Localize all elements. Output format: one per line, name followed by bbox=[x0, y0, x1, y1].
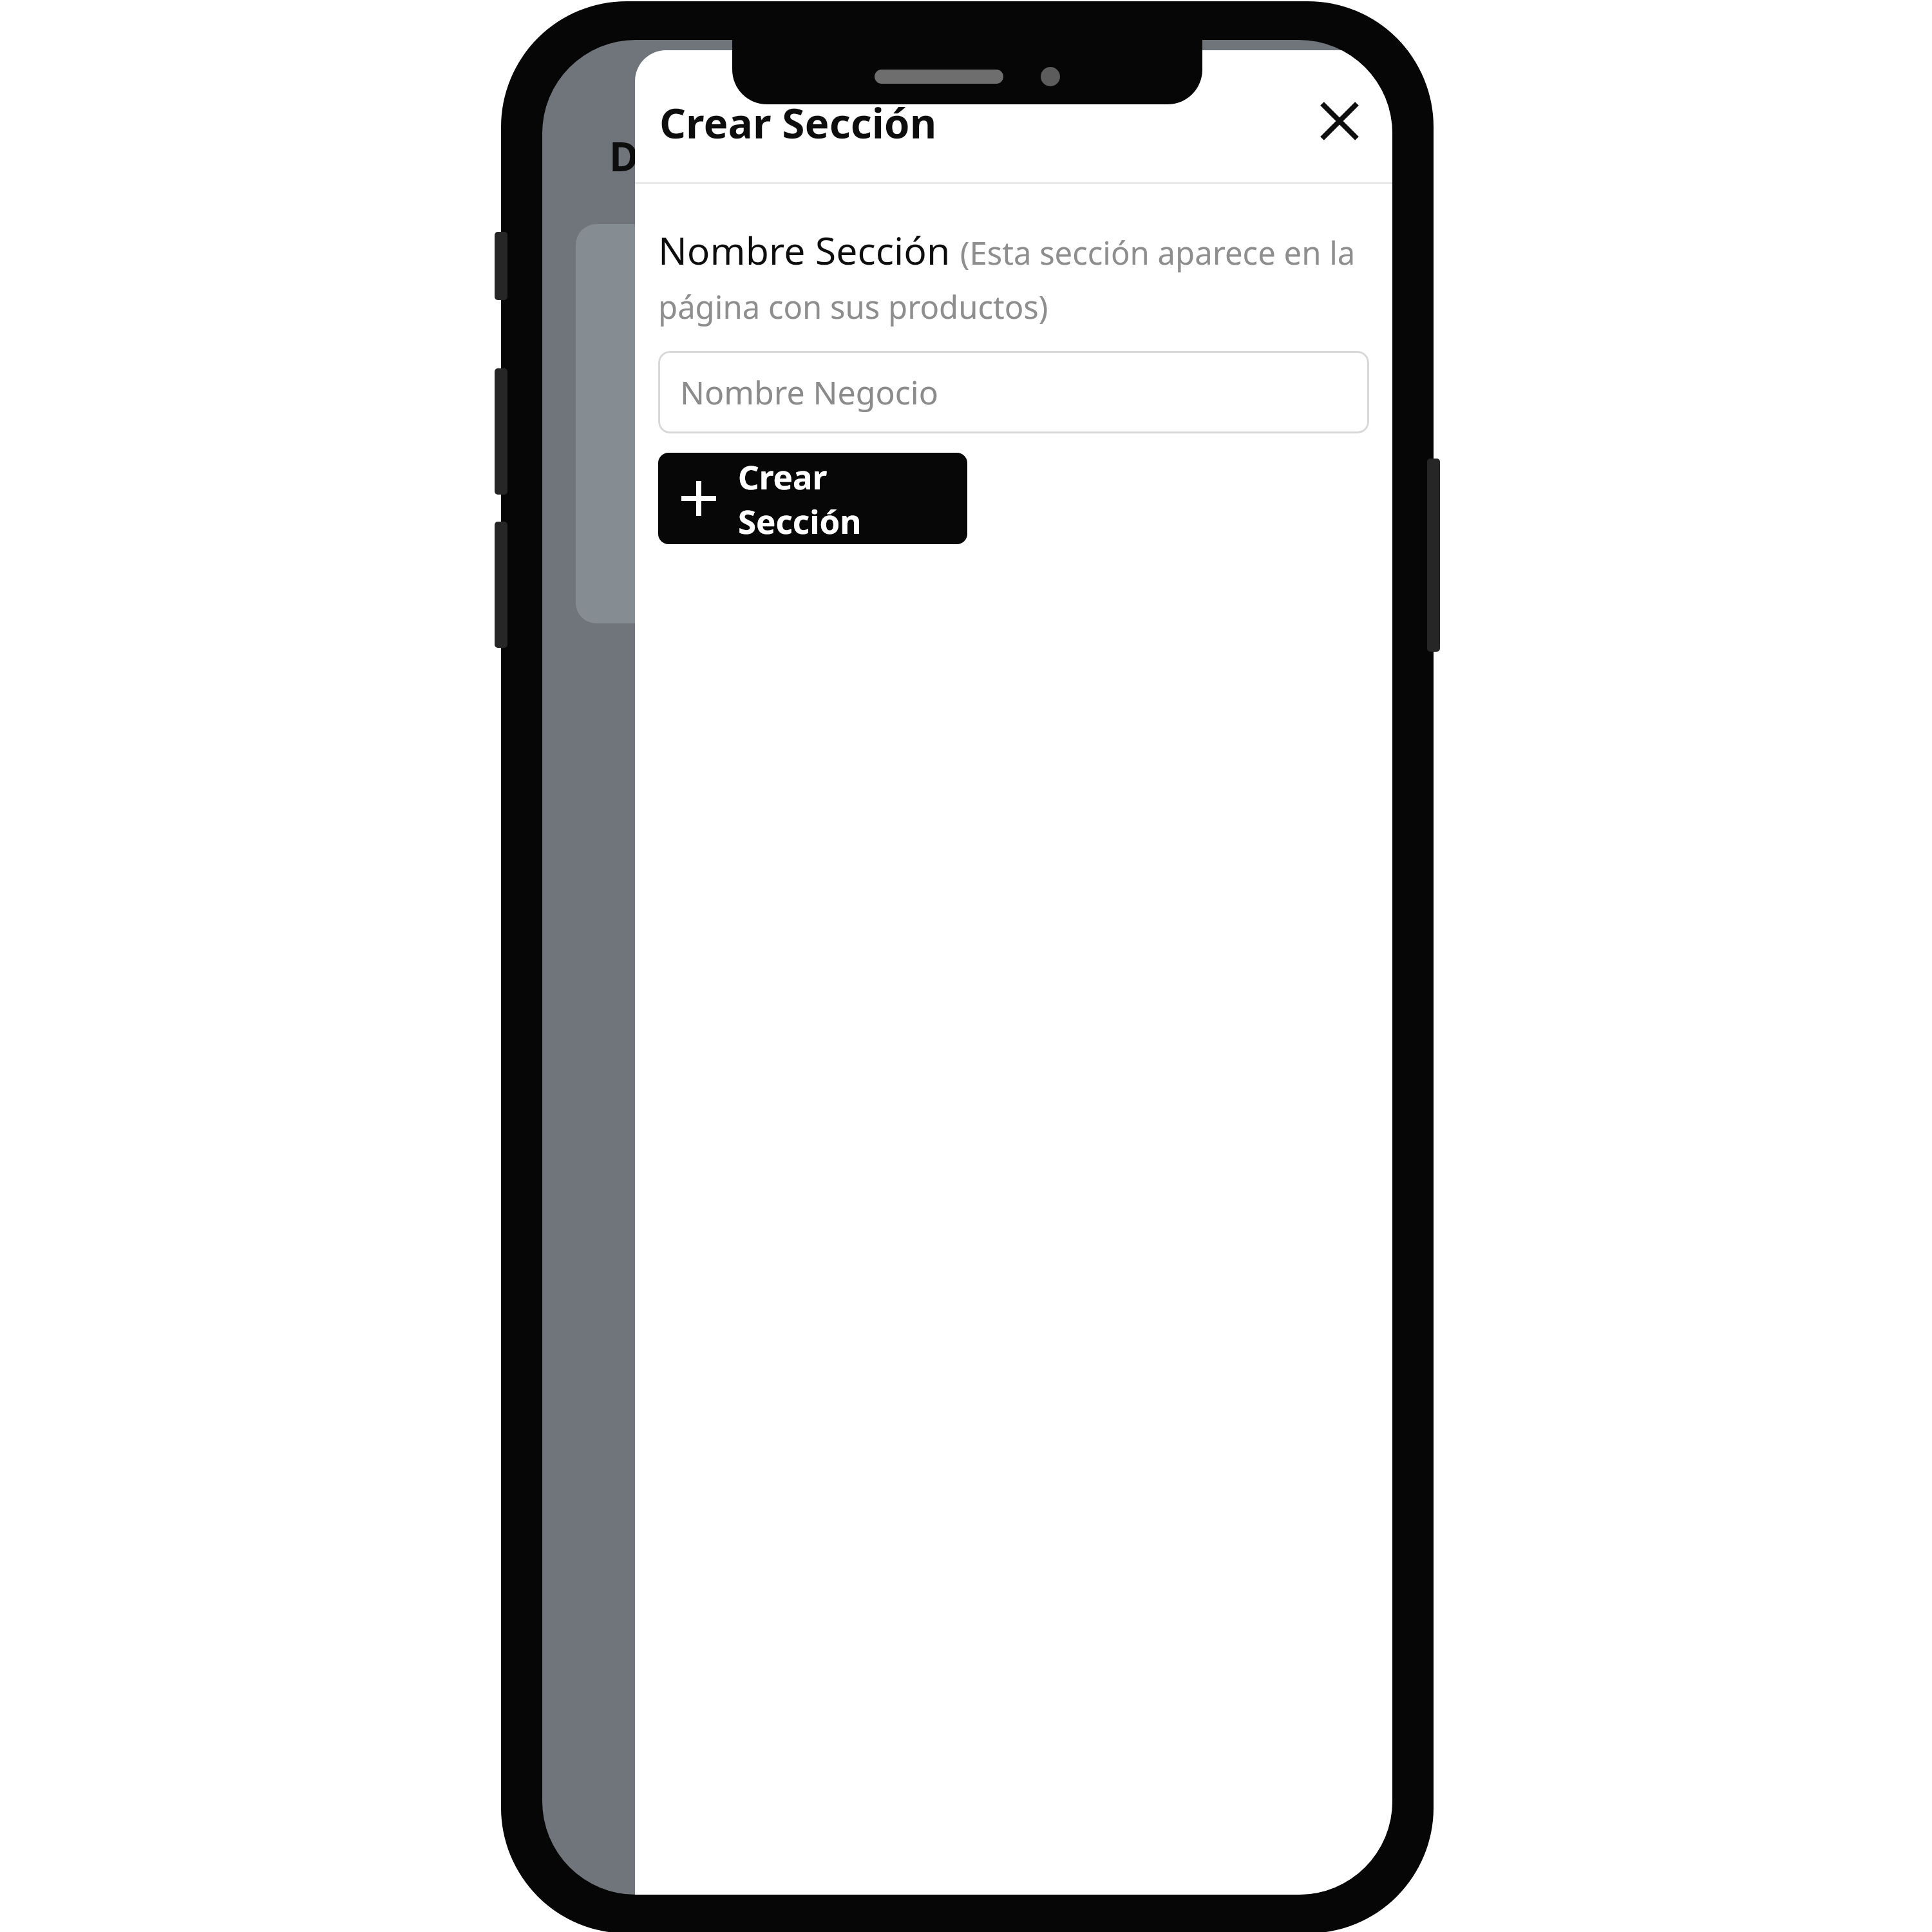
button[interactable]: Crear Sección bbox=[658, 453, 967, 544]
button[interactable]: Cerrar bbox=[1303, 85, 1376, 157]
staticText: Nombre Negocio bbox=[680, 370, 938, 414]
staticText: Crear Sección bbox=[738, 454, 944, 543]
button[interactable]: Nombre Negocio bbox=[658, 351, 1369, 433]
staticText: D bbox=[609, 129, 639, 183]
staticText: Nombre Sección (Esta sección aparece en … bbox=[658, 224, 1373, 328]
button[interactable]: Menú bbox=[1294, 130, 1359, 206]
staticText: Crear Sección bbox=[659, 95, 937, 151]
